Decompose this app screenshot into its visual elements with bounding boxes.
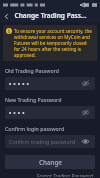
staticText: Change Trading Pass... (14, 11, 87, 20)
staticText: To ensure your account security, the wit… (14, 28, 94, 58)
button[interactable]: Show confirm trading password (80, 136, 91, 147)
staticText: New Trading Password (5, 96, 62, 103)
staticText: Confirm trading password (9, 138, 76, 145)
button[interactable]: Forgot Trading Password (36, 172, 95, 178)
button[interactable]: Show new trading password (80, 107, 91, 118)
button[interactable]: Show new trading password (5, 106, 95, 119)
button[interactable]: Change (5, 155, 95, 169)
button[interactable]: Confirm trading password (5, 135, 95, 148)
staticText: Old Trading Password (5, 67, 60, 74)
button[interactable]: Back (0, 10, 12, 22)
staticText: Forgot Trading Password (37, 173, 94, 177)
button[interactable]: Show old trading password (80, 78, 91, 89)
staticText: Confirm login password (5, 125, 65, 132)
staticText: Change (39, 158, 62, 166)
button[interactable]: Show old trading password (5, 77, 95, 90)
